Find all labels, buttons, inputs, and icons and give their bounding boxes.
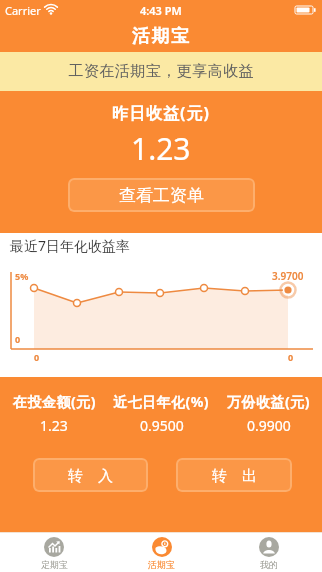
button[interactable]: 查看工资单 <box>68 178 255 212</box>
button[interactable]: 我的 <box>215 533 322 572</box>
staticText: 万份收益(元) <box>227 392 310 411</box>
button[interactable]: 转 出 <box>176 458 292 492</box>
staticText: Carrier <box>5 3 41 18</box>
staticText: 0 <box>34 351 40 363</box>
button[interactable]: 活期宝 <box>108 533 215 572</box>
staticText: 0.9900 <box>247 416 291 435</box>
staticText: 0 <box>288 351 294 363</box>
staticText: 5% <box>15 270 29 282</box>
staticText: 1.23 <box>40 416 68 435</box>
button[interactable]: 定期宝 <box>0 533 108 572</box>
staticText: 0 <box>15 333 21 345</box>
staticText: 定期宝 <box>41 559 68 570</box>
staticText: 4:43 PM <box>140 3 182 18</box>
staticText: 转 入 <box>68 465 113 485</box>
staticText: 我的 <box>260 559 278 570</box>
staticText: 昨日收益(元) <box>112 102 210 124</box>
staticText: 在投金额(元) <box>13 392 96 411</box>
button[interactable]: 转 入 <box>33 458 148 492</box>
button[interactable]: 工资在活期宝，更享高收益 <box>0 52 322 91</box>
staticText: 最近7日年化收益率 <box>10 236 131 255</box>
staticText: 查看工资单 <box>119 185 204 206</box>
staticText: 转 出 <box>212 465 257 485</box>
staticText: 活期宝 <box>148 559 175 570</box>
staticText: 1.23 <box>131 128 191 169</box>
staticText: 近七日年化(%) <box>113 392 210 411</box>
staticText: 活期宝 <box>132 25 191 48</box>
staticText: 0.9500 <box>140 416 184 435</box>
staticText: 工资在活期宝，更享高收益 <box>68 62 254 81</box>
staticText: 3.9700 <box>272 269 304 283</box>
